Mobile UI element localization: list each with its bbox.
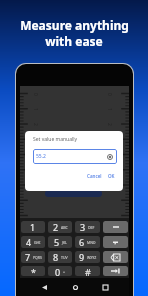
button[interactable]: Recents bbox=[99, 281, 111, 293]
staticText: 1 bbox=[106, 108, 113, 111]
staticText: 0 bbox=[55, 266, 61, 276]
button[interactable]: OK bbox=[106, 172, 117, 180]
button[interactable]: Back bbox=[38, 281, 50, 293]
staticText: 4 bbox=[26, 236, 32, 248]
staticText: MNO bbox=[87, 240, 96, 245]
staticText: PQRS bbox=[33, 255, 42, 260]
staticText: 5 bbox=[54, 236, 60, 248]
staticText: 2 bbox=[32, 123, 39, 126]
staticText: WXYZ bbox=[87, 255, 97, 260]
button[interactable]: 9 bbox=[75, 251, 100, 263]
staticText: 3 bbox=[80, 221, 86, 233]
button[interactable]: * bbox=[21, 266, 45, 276]
button[interactable]: 7 bbox=[21, 251, 45, 263]
staticText: TUV bbox=[61, 255, 68, 260]
button[interactable]: 5 bbox=[48, 236, 72, 248]
staticText: 8 bbox=[53, 251, 59, 263]
staticText: with ease bbox=[45, 33, 103, 49]
staticText: 1 bbox=[32, 108, 39, 111]
button[interactable]: 55.2 bbox=[33, 149, 117, 164]
button[interactable]: Minus bbox=[103, 221, 128, 233]
staticText: ABC bbox=[61, 225, 68, 230]
staticText: Cancel bbox=[87, 173, 102, 179]
staticText: 2 bbox=[53, 221, 59, 233]
staticText: # bbox=[85, 266, 91, 276]
staticText: 0 bbox=[106, 93, 113, 96]
staticText: 2 bbox=[106, 123, 113, 126]
staticText: 3 bbox=[32, 138, 39, 141]
button[interactable]: # bbox=[75, 266, 100, 276]
staticText: Measure anything bbox=[20, 17, 129, 33]
staticText: 9 bbox=[79, 251, 85, 263]
button[interactable]: 4 bbox=[21, 236, 45, 248]
button[interactable]: 3 bbox=[75, 221, 100, 233]
button[interactable]: 0 bbox=[48, 266, 72, 276]
button[interactable]: 6 bbox=[75, 236, 100, 248]
button[interactable]: 8 bbox=[48, 251, 72, 263]
staticText: Set value manually bbox=[33, 136, 78, 143]
staticText: + bbox=[63, 269, 66, 274]
button[interactable]: 2 bbox=[48, 221, 72, 233]
staticText: 7 bbox=[25, 251, 31, 263]
button[interactable] bbox=[45, 190, 102, 197]
staticText: * bbox=[31, 266, 36, 276]
staticText: 6 bbox=[79, 236, 85, 248]
staticText: DEF bbox=[88, 225, 95, 230]
button[interactable]: Comma bbox=[103, 236, 128, 248]
staticText: 0 bbox=[32, 93, 39, 96]
button[interactable]: Next bbox=[103, 266, 128, 276]
button[interactable]: Backspace bbox=[103, 251, 128, 263]
button[interactable]: 1 bbox=[21, 221, 45, 233]
button[interactable]: Home bbox=[69, 281, 81, 293]
staticText: GHI bbox=[34, 240, 41, 245]
button[interactable]: Cancel bbox=[85, 172, 104, 180]
staticText: 55.2 bbox=[36, 153, 46, 160]
staticText: JKL bbox=[62, 240, 67, 245]
staticText: OK bbox=[108, 173, 115, 179]
staticText: 1 bbox=[30, 221, 36, 233]
